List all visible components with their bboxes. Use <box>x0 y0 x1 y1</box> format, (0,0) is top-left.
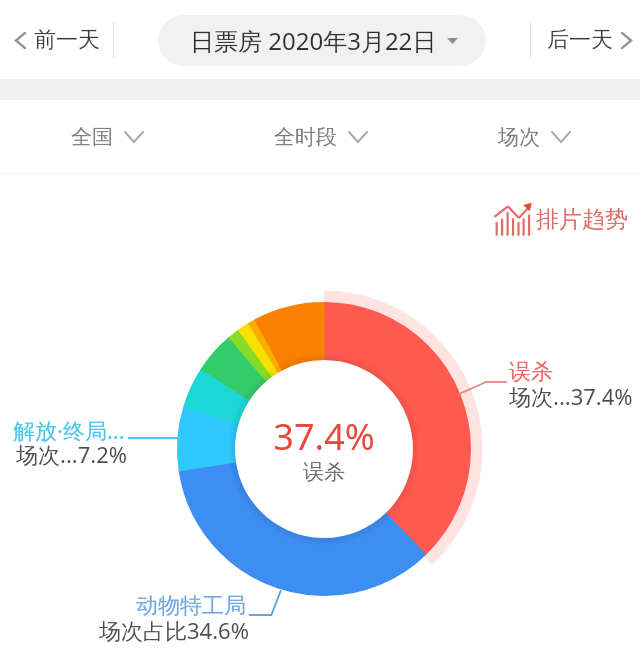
staticText: 排片趋势 <box>536 205 628 234</box>
staticText: 场次占比34.6% <box>99 615 249 645</box>
staticText: 全国 <box>71 124 113 150</box>
staticText: 场次...37.4% <box>509 381 633 411</box>
button[interactable]: 场次 <box>427 100 640 173</box>
staticText: 日票房 2020年3月22日 <box>190 24 437 57</box>
staticText: 前一天 <box>34 26 100 54</box>
staticText: 误杀 <box>234 459 414 485</box>
button[interactable]: 排片趋势 <box>492 202 628 236</box>
button[interactable]: 全国 <box>0 100 214 173</box>
button[interactable]: 全时段 <box>214 100 427 173</box>
staticText: 场次 <box>498 124 540 150</box>
button[interactable]: 前一天 <box>6 16 108 64</box>
button[interactable]: 日票房 2020年3月22日 <box>158 15 486 66</box>
button[interactable]: 后一天 <box>541 16 639 64</box>
staticText: 全时段 <box>274 124 337 150</box>
staticText: 37.4% <box>234 412 414 461</box>
staticText: 场次...7.2% <box>16 439 128 469</box>
other: 场次占比环形图 <box>0 0 640 654</box>
staticText: 解放·终局... <box>13 415 125 445</box>
staticText: 误杀 <box>509 358 553 386</box>
staticText: 后一天 <box>547 26 613 54</box>
staticText: 动物特工局 <box>136 592 246 620</box>
